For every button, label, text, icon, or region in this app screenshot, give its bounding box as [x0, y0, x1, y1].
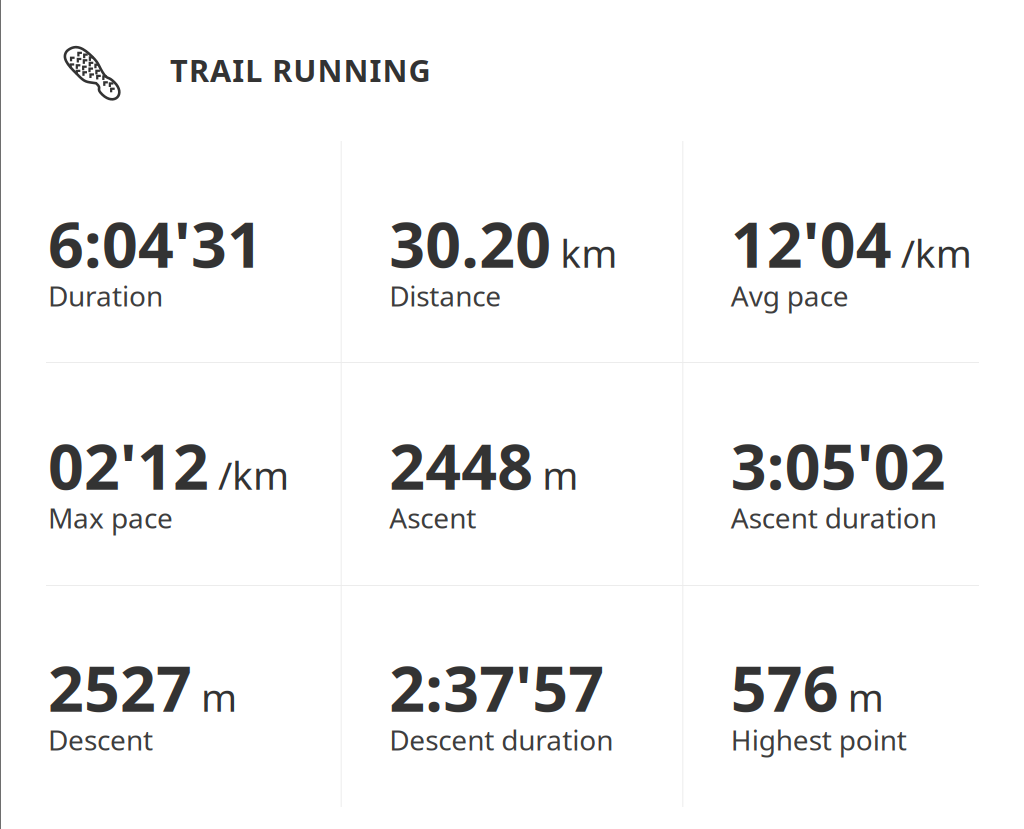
staticText: Ascent duration	[731, 499, 937, 536]
staticText: 30.20	[389, 202, 551, 285]
staticText: Ascent	[389, 499, 476, 536]
button[interactable]: 6:04'31	[0, 140, 341, 362]
staticText: Duration	[48, 277, 163, 314]
staticText: Highest point	[731, 721, 907, 758]
button[interactable]: 576	[683, 586, 1024, 808]
staticText: Descent duration	[389, 721, 613, 758]
staticText: m	[848, 671, 884, 722]
staticText: km	[560, 227, 617, 278]
staticText: TRAIL RUNNING	[170, 50, 431, 90]
staticText: 3:05'02	[731, 424, 946, 507]
button[interactable]: 2448	[341, 363, 683, 585]
button[interactable]: 02'12	[0, 363, 341, 585]
staticText: Descent	[48, 721, 153, 758]
staticText: Avg pace	[731, 277, 849, 314]
button[interactable]: 3:05'02	[683, 363, 1024, 585]
staticText: m	[542, 449, 578, 500]
staticText: 12'04	[731, 202, 892, 285]
button[interactable]: 2527	[0, 586, 341, 808]
staticText: 2448	[389, 424, 533, 507]
staticText: Distance	[389, 277, 501, 314]
staticText: Max pace	[48, 499, 173, 536]
button[interactable]: 12'04	[683, 140, 1024, 362]
staticText: 2:37'57	[389, 646, 604, 729]
staticText: /km	[218, 449, 289, 500]
staticText: m	[201, 671, 237, 722]
staticText: 6:04'31	[48, 202, 263, 285]
staticText: 02'12	[48, 424, 209, 507]
staticText: /km	[901, 227, 972, 278]
staticText: 2527	[48, 646, 192, 729]
button[interactable]: 2:37'57	[341, 586, 683, 808]
staticText: 576	[731, 646, 839, 729]
button[interactable]: 30.20	[341, 140, 683, 362]
